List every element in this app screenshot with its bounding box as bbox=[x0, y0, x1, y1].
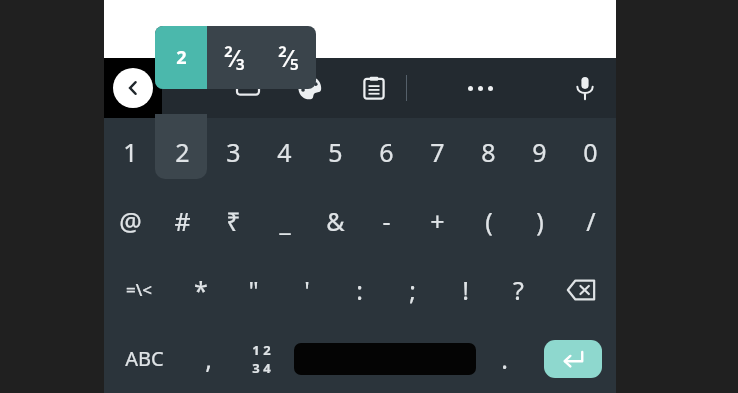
button[interactable]: Enter bbox=[529, 324, 616, 393]
staticText: 1 bbox=[123, 135, 138, 169]
button[interactable]: . bbox=[480, 324, 529, 393]
staticText: & bbox=[326, 204, 345, 238]
button[interactable]: Voice input bbox=[554, 58, 616, 118]
staticText: 6 bbox=[379, 135, 394, 169]
button[interactable]: 6 bbox=[361, 118, 412, 186]
button[interactable]: ' bbox=[280, 255, 333, 324]
button[interactable]: # bbox=[156, 186, 208, 255]
staticText: 4 bbox=[277, 135, 292, 169]
button[interactable]: ( bbox=[463, 186, 514, 255]
button[interactable]: ! bbox=[439, 255, 492, 324]
staticText: 2 bbox=[176, 45, 187, 70]
button[interactable]: Space bbox=[290, 324, 480, 393]
staticText: 2 bbox=[175, 135, 190, 169]
staticText: ABC bbox=[125, 345, 164, 372]
staticText: # bbox=[174, 204, 191, 238]
staticText: 0 bbox=[583, 135, 598, 169]
button[interactable]: * bbox=[174, 255, 227, 324]
button[interactable]: ; bbox=[386, 255, 439, 324]
staticText: @ bbox=[119, 204, 142, 238]
button[interactable]: Clipboard bbox=[342, 58, 406, 118]
button[interactable]: 7 bbox=[412, 118, 463, 186]
button[interactable]: : bbox=[333, 255, 386, 324]
button[interactable]: =\< bbox=[104, 255, 174, 324]
staticText: 1 2 bbox=[252, 341, 271, 359]
staticText: ²⁄₅ bbox=[278, 41, 299, 74]
staticText: ) bbox=[536, 204, 544, 238]
staticText: 8 bbox=[481, 135, 496, 169]
button[interactable]: Backspace bbox=[545, 255, 616, 324]
button[interactable]: , bbox=[184, 324, 233, 393]
button[interactable]: ) bbox=[514, 186, 565, 255]
button[interactable]: 3 bbox=[208, 118, 259, 186]
button[interactable]: ? bbox=[492, 255, 545, 324]
staticText: 5 bbox=[328, 135, 343, 169]
button[interactable]: 1 bbox=[104, 118, 156, 186]
button[interactable]: More options bbox=[407, 58, 554, 118]
staticText: * bbox=[194, 273, 208, 307]
button[interactable]: 4 bbox=[259, 118, 310, 186]
staticText: ; bbox=[409, 273, 416, 307]
button[interactable]: 2 bbox=[156, 118, 208, 186]
staticText: , bbox=[205, 342, 212, 376]
button[interactable]: Back bbox=[104, 58, 162, 118]
button[interactable]: Theme bbox=[278, 58, 342, 118]
staticText: - bbox=[382, 204, 391, 238]
button[interactable]: ₹ bbox=[208, 186, 259, 255]
button[interactable]: ABC bbox=[104, 324, 184, 393]
staticText: . bbox=[501, 342, 508, 376]
button[interactable]: - bbox=[361, 186, 412, 255]
other: Enter bbox=[544, 340, 602, 378]
button[interactable]: ²⁄₅ bbox=[261, 26, 316, 89]
button[interactable]: Stickers bbox=[218, 58, 278, 118]
staticText: _ bbox=[279, 204, 291, 238]
button[interactable]: 9 bbox=[514, 118, 565, 186]
staticText: ²⁄₃ bbox=[224, 41, 245, 74]
button[interactable]: _ bbox=[259, 186, 310, 255]
staticText: 3 bbox=[226, 135, 241, 169]
button[interactable]: 1 2 bbox=[233, 324, 290, 393]
button[interactable]: & bbox=[310, 186, 361, 255]
staticText: =\< bbox=[126, 278, 152, 301]
button[interactable]: @ bbox=[104, 186, 156, 255]
staticText: ( bbox=[485, 204, 493, 238]
button[interactable]: 8 bbox=[463, 118, 514, 186]
staticText: ₹ bbox=[226, 204, 241, 238]
staticText: ! bbox=[462, 273, 469, 307]
staticText: 9 bbox=[532, 135, 547, 169]
button[interactable]: + bbox=[412, 186, 463, 255]
other: Space bbox=[294, 343, 476, 375]
staticText: ' bbox=[304, 273, 310, 307]
button[interactable]: ²⁄₃ bbox=[207, 26, 261, 89]
staticText: + bbox=[430, 204, 445, 238]
button[interactable]: 0 bbox=[565, 118, 616, 186]
staticText: ? bbox=[513, 273, 524, 307]
button[interactable]: / bbox=[565, 186, 616, 255]
staticText: 3 4 bbox=[252, 359, 271, 377]
staticText: " bbox=[248, 273, 259, 307]
button[interactable]: 2 bbox=[155, 26, 207, 89]
button[interactable]: " bbox=[227, 255, 280, 324]
staticText: 7 bbox=[430, 135, 445, 169]
staticText: / bbox=[586, 204, 596, 238]
button[interactable]: 5 bbox=[310, 118, 361, 186]
staticText: : bbox=[356, 273, 363, 307]
